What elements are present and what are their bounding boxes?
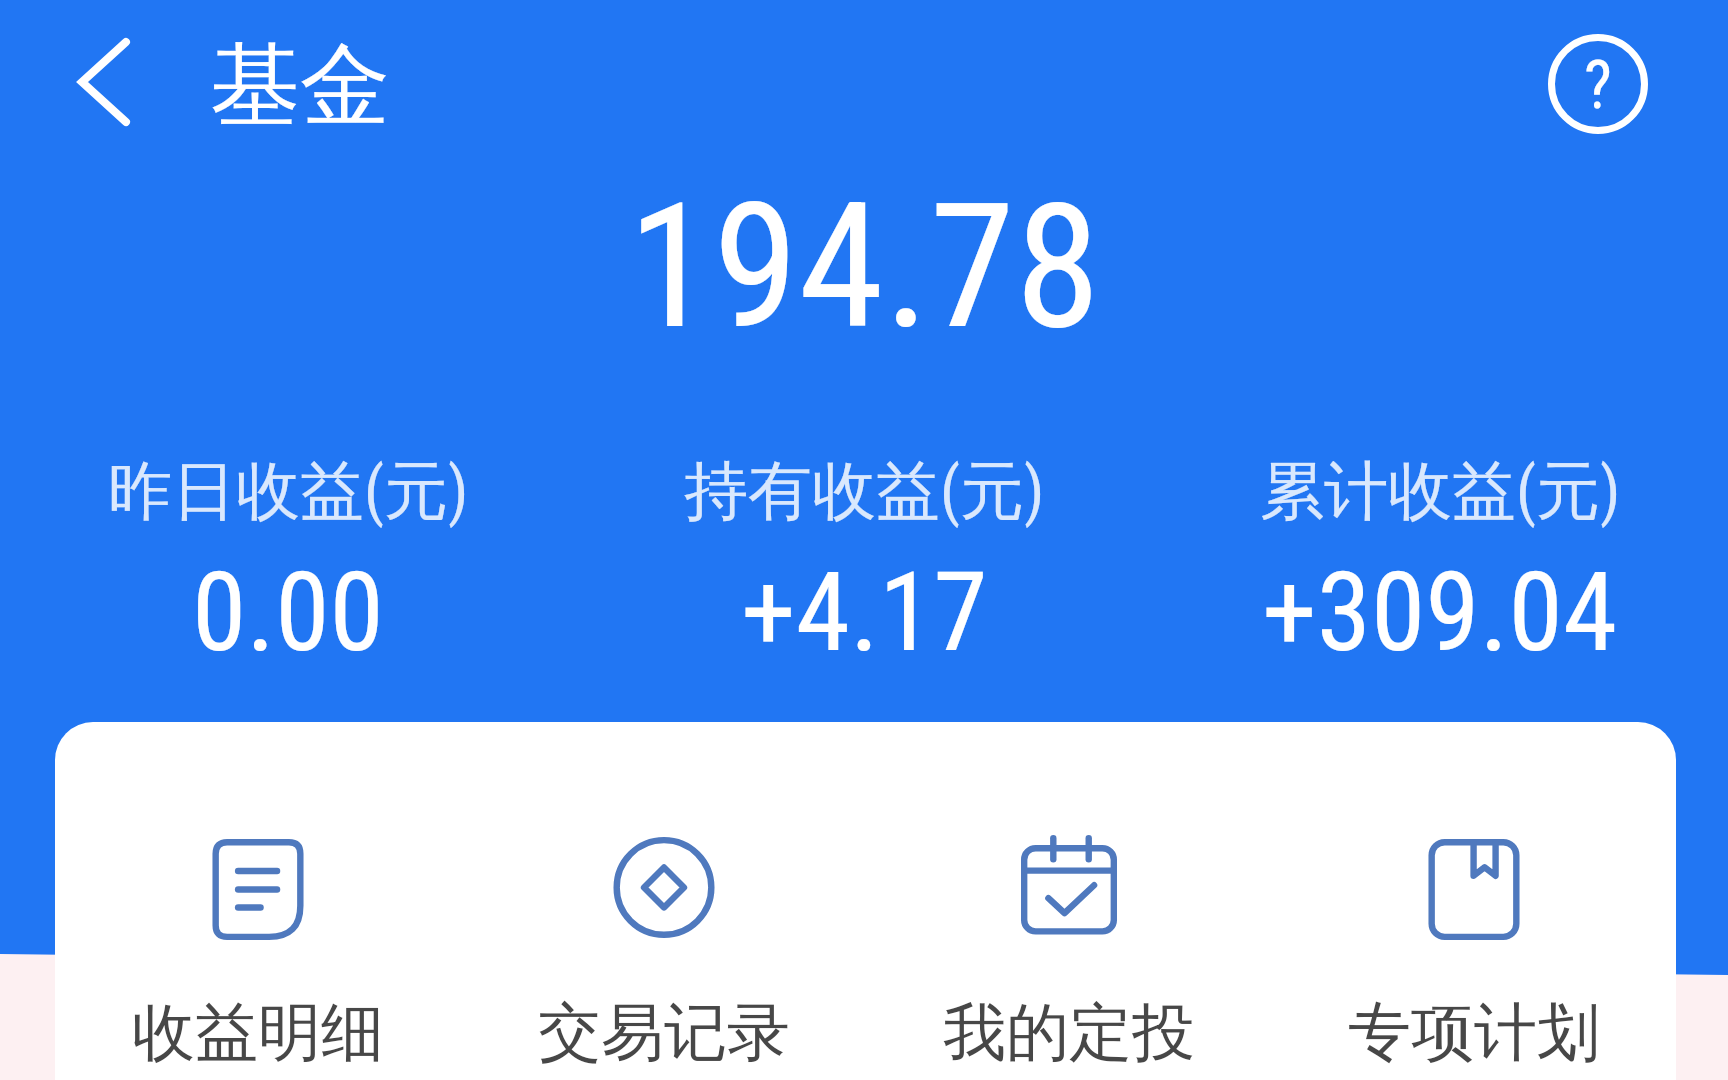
- button[interactable]: 专项计划: [1271, 722, 1676, 1080]
- button[interactable]: 我的定投: [866, 722, 1271, 1080]
- button[interactable]: 累计收益(元): [1152, 451, 1728, 677]
- staticText: 昨日收益(元): [108, 451, 469, 532]
- staticText: 持有收益(元): [684, 451, 1045, 532]
- staticText: 累计收益(元): [1260, 451, 1621, 532]
- button[interactable]: 交易记录: [461, 722, 866, 1080]
- button[interactable]: 持有收益(元): [576, 451, 1152, 677]
- staticText: 0.00: [192, 548, 384, 677]
- button[interactable]: 收益明细: [55, 722, 461, 1080]
- staticText: 我的定投: [943, 993, 1195, 1072]
- button[interactable]: Back: [56, 26, 152, 138]
- staticText: 194.78: [0, 166, 1728, 369]
- staticText: 交易记录: [538, 993, 790, 1072]
- staticText: ?: [1584, 47, 1612, 124]
- staticText: 基金: [210, 29, 390, 142]
- staticText: 专项计划: [1348, 993, 1600, 1072]
- staticText: 收益明细: [132, 993, 384, 1072]
- button[interactable]: Help: [1538, 24, 1658, 144]
- staticText: +309.04: [1262, 548, 1618, 677]
- button[interactable]: 昨日收益(元): [0, 451, 576, 677]
- staticText: +4.17: [741, 548, 988, 677]
